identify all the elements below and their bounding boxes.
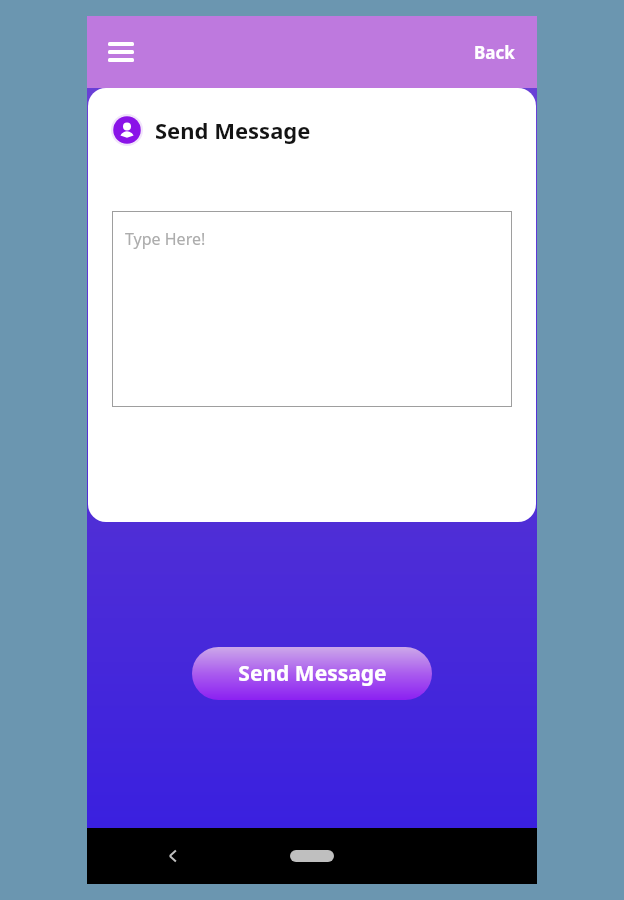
staticText: Send Message	[238, 659, 387, 688]
staticText: Back	[474, 41, 515, 64]
staticText: Send Message	[155, 115, 311, 145]
button[interactable]: Type Here!	[112, 211, 512, 407]
button[interactable]: Back	[466, 33, 523, 72]
button[interactable]: Menu	[97, 28, 145, 76]
button[interactable]: Send Message	[192, 647, 432, 700]
staticText: Type Here!	[125, 228, 206, 250]
button[interactable]: Home	[290, 850, 334, 862]
button[interactable]: Back	[151, 834, 195, 878]
